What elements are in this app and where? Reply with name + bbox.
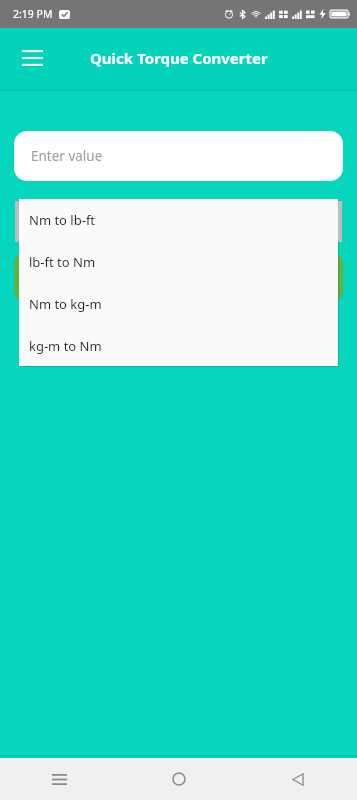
button[interactable]: Enter value <box>14 131 343 181</box>
button[interactable]: Recent apps <box>0 758 119 800</box>
button[interactable]: Nm to kg-m <box>19 283 338 325</box>
button[interactable]: CONVERT <box>14 253 343 301</box>
button[interactable]: lb-ft to Nm <box>19 241 338 283</box>
staticText: kg-m to Nm <box>29 337 102 355</box>
staticText: Nm to lb-ft <box>29 211 96 229</box>
staticText: Nm to kg-m <box>29 295 102 313</box>
button[interactable]: Home <box>119 758 238 800</box>
button[interactable]: Nm to lb-ft <box>19 199 338 241</box>
button[interactable]: Back <box>238 758 357 800</box>
staticText: lb-ft to Nm <box>29 253 96 271</box>
staticText: Quick Torque Converter <box>90 48 268 68</box>
staticText: Enter value <box>31 147 103 165</box>
staticText: 2:19 PM <box>13 7 53 21</box>
button[interactable]: kg-m to Nm <box>19 325 338 366</box>
button[interactable]: Open navigation menu <box>10 36 54 80</box>
